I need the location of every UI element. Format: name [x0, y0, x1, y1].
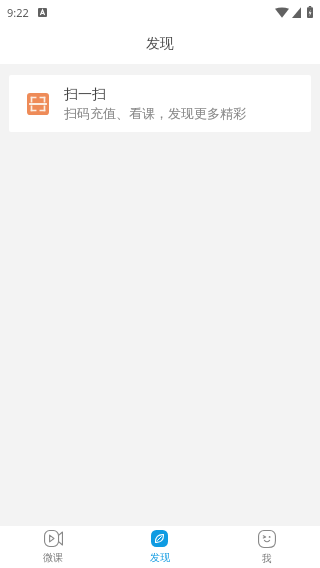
button[interactable]: 发现 [106, 526, 213, 568]
staticText: 扫一扫 [64, 86, 106, 104]
other: 发现 [151, 530, 168, 547]
staticText: 我 [262, 552, 272, 565]
button[interactable]: 扫一扫 [9, 75, 311, 132]
staticText: 9:22 [7, 5, 29, 20]
staticText: 微课 [43, 551, 63, 564]
staticText: 发现 [146, 35, 174, 53]
staticText: 扫码充值、看课，发现更多精彩 [64, 105, 246, 121]
staticText: 发现 [150, 551, 170, 564]
other: 微课 [44, 530, 63, 547]
other: 我 [258, 530, 276, 548]
button[interactable]: 微课 [0, 526, 106, 568]
button[interactable]: 我 [213, 526, 320, 568]
